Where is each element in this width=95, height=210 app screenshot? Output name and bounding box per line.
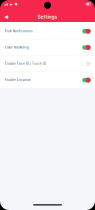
staticText: Push Notifications <box>5 29 32 33</box>
button[interactable]: Enable Face ID / Touch ID <box>0 56 95 72</box>
staticText: Enable Face ID / Touch ID <box>5 62 46 65</box>
button[interactable]: Back <box>3 14 14 21</box>
button[interactable]: Push Notifications <box>0 23 95 39</box>
button[interactable]: Enable Location <box>0 72 95 88</box>
staticText: Enable Location <box>5 78 31 82</box>
button[interactable]: Email Marketing <box>0 40 95 55</box>
staticText: Email Marketing <box>5 46 29 49</box>
staticText: Settings <box>37 14 57 20</box>
